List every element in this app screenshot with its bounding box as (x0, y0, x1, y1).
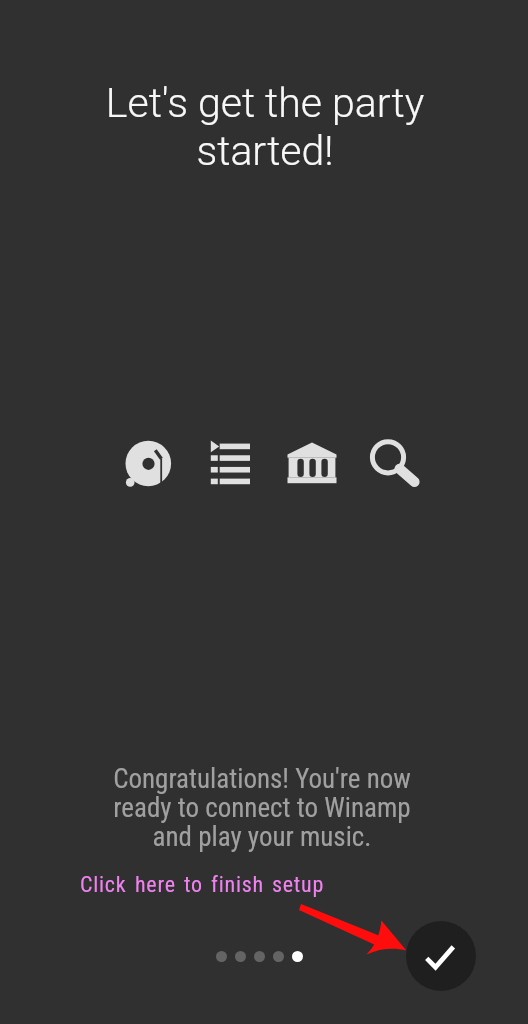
button[interactable]: Click (80, 872, 325, 898)
button[interactable]: Now playing (124, 437, 174, 489)
staticText: Congratulations! You're now ready to con… (104, 763, 420, 853)
staticText: finish (211, 872, 264, 898)
staticText: here (135, 872, 176, 898)
staticText: setup (272, 872, 325, 898)
button[interactable]: Search (368, 436, 422, 490)
button[interactable]: Playlists (209, 438, 253, 488)
staticText: to (184, 872, 203, 898)
staticText: Click (80, 872, 127, 898)
button[interactable]: Finish setup (406, 921, 476, 991)
staticText: Let's get the party started! (100, 79, 430, 175)
button[interactable]: Library (286, 440, 338, 486)
